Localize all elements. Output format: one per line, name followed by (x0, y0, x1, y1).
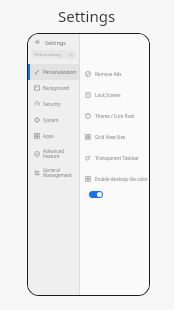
button[interactable]: Remove Ads (80, 63, 149, 84)
button[interactable]: Grid View Size (80, 126, 149, 147)
staticText: Background (43, 85, 70, 91)
staticText: Settings (45, 39, 66, 46)
button[interactable]: System (28, 112, 79, 128)
button[interactable]: Personalization (28, 64, 79, 80)
staticText: Find a setting (34, 52, 69, 58)
staticText: Theme / Icon Pack (95, 113, 135, 119)
staticText: Advanced Feature (43, 148, 65, 160)
button[interactable]: Advanced Feature (28, 144, 79, 163)
button[interactable]: Lock Screen (80, 84, 149, 105)
staticText: General Management (43, 167, 72, 179)
staticText: Transparent Taskbar (95, 155, 139, 161)
staticText: Lock Screen (95, 92, 121, 98)
staticText: Remove Ads (95, 71, 122, 77)
button[interactable]: General Management (28, 163, 79, 182)
button[interactable]: Toggle desktop tile color (89, 191, 103, 198)
button[interactable]: Background (28, 80, 79, 96)
staticText: Personalization (43, 69, 77, 75)
button[interactable]: Apps (28, 128, 79, 144)
staticText: Grid View Size (95, 134, 126, 140)
button[interactable]: Enable desktop tile color (80, 168, 149, 189)
staticText: Security (43, 101, 61, 107)
staticText: Settings (58, 6, 116, 26)
button[interactable]: Back (32, 37, 42, 47)
staticText: System (43, 117, 59, 123)
button[interactable]: Theme / Icon Pack (80, 105, 149, 126)
staticText: Enable desktop tile color (95, 176, 148, 182)
button[interactable]: Transparent Taskbar (80, 147, 149, 168)
button[interactable]: Security (28, 96, 79, 112)
staticText: Apps (43, 133, 54, 139)
button[interactable]: Find a setting (31, 50, 76, 59)
